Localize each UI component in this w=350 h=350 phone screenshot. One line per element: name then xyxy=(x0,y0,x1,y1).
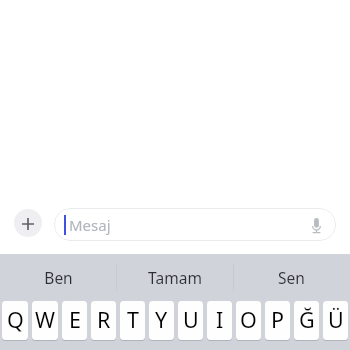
button[interactable]: Ben xyxy=(0,254,116,301)
button[interactable]: T xyxy=(120,301,145,340)
button[interactable]: Q xyxy=(2,301,28,340)
staticText: Y xyxy=(155,305,168,334)
staticText: I xyxy=(216,305,224,334)
button[interactable]: P xyxy=(265,301,290,340)
staticText: Mesaj xyxy=(69,215,111,235)
staticText: U xyxy=(183,305,199,334)
staticText: Ğ xyxy=(299,305,315,334)
button[interactable]: I xyxy=(207,301,232,340)
button[interactable]: Voice input xyxy=(305,214,327,236)
button[interactable]: U xyxy=(178,301,203,340)
button[interactable]: E xyxy=(62,301,87,340)
button[interactable]: Ü xyxy=(323,301,348,340)
staticText: O xyxy=(240,305,257,334)
staticText: Q xyxy=(7,305,24,334)
staticText: P xyxy=(271,305,285,334)
button[interactable]: O xyxy=(236,301,261,340)
button[interactable]: Sen xyxy=(233,254,350,301)
staticText: Ü xyxy=(328,305,344,334)
button[interactable]: Mesaj xyxy=(54,208,336,241)
staticText: R xyxy=(97,305,111,334)
button[interactable]: W xyxy=(32,301,58,340)
button[interactable]: Y xyxy=(149,301,174,340)
button[interactable]: Ğ xyxy=(294,301,319,340)
staticText: Tamam xyxy=(148,267,202,288)
button[interactable]: R xyxy=(91,301,116,340)
staticText: E xyxy=(69,305,81,334)
staticText: W xyxy=(35,305,55,334)
staticText: Sen xyxy=(278,267,305,288)
button[interactable]: Tamam xyxy=(116,254,233,301)
button[interactable]: Add attachment xyxy=(14,209,42,237)
staticText: T xyxy=(127,305,139,334)
staticText: Ben xyxy=(44,267,73,288)
